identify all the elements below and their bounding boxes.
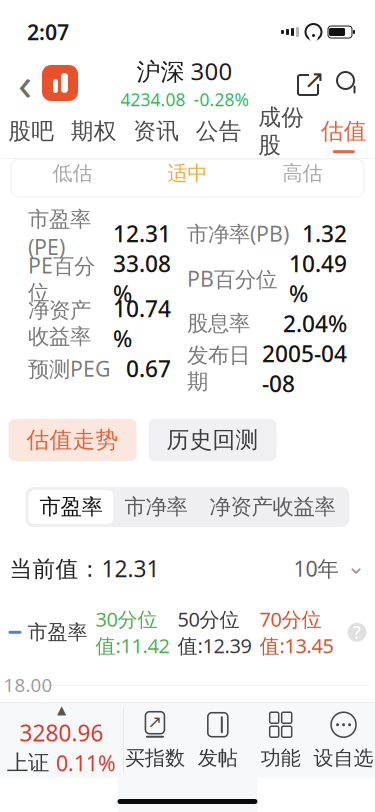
staticText: ▲ — [57, 703, 66, 717]
button[interactable]: 10年 — [293, 553, 365, 584]
button[interactable]: 市盈率 — [28, 490, 113, 524]
button[interactable]: 市净率 — [113, 490, 198, 524]
staticText: 公告 — [196, 117, 242, 145]
staticText: 3280.96 — [19, 718, 103, 748]
staticText: 10.49% — [289, 248, 347, 309]
staticText: 股吧 — [8, 117, 54, 145]
button[interactable]: 设自选 — [312, 702, 375, 778]
staticText: 50分位值:12.39 — [177, 606, 251, 659]
staticText: 低估 — [52, 161, 92, 186]
staticText: 市盈率(PE) — [28, 206, 91, 261]
button[interactable]: 返回 — [10, 61, 40, 105]
staticText: 当前值：12.31 — [9, 553, 159, 583]
staticText: 历史回测 — [166, 426, 258, 454]
staticText: 0.11% — [56, 749, 116, 777]
staticText: 设自选 — [314, 746, 374, 770]
staticText: 适中 — [167, 161, 207, 186]
staticText: 净资产收益率 — [28, 297, 91, 350]
staticText: 2:07 — [27, 18, 69, 46]
staticText: 1.32 — [302, 218, 347, 248]
staticText: 市净率(PB) — [187, 219, 289, 248]
staticText: 12.31 — [113, 218, 171, 248]
staticText: 市净率 — [124, 494, 187, 520]
staticText: ↗ — [303, 65, 324, 94]
button[interactable]: ↗ — [123, 702, 186, 778]
button[interactable]: 功能 — [249, 702, 312, 778]
button[interactable]: 成份股 — [250, 112, 312, 158]
staticText: 2.04% — [283, 308, 347, 338]
staticText: 股息率 — [187, 310, 250, 337]
staticText: 买指数 — [125, 746, 185, 770]
staticText: 估值 — [321, 117, 367, 145]
staticText: 10.74% — [113, 293, 171, 354]
staticText: 33.08% — [113, 248, 171, 309]
staticText: 市盈率 — [27, 620, 87, 645]
staticText: 高估 — [282, 161, 322, 186]
staticText: 功能 — [261, 746, 301, 770]
button[interactable]: 搜索 — [329, 61, 367, 105]
staticText: PE百分位 — [28, 251, 95, 306]
button[interactable]: 股吧 — [0, 112, 62, 158]
button[interactable]: 估值 — [312, 112, 375, 158]
staticText: 4234.08 — [120, 88, 185, 111]
staticText: 18.00 — [3, 672, 52, 697]
staticText: ↗ — [147, 712, 162, 732]
button[interactable]: 历史回测 — [148, 419, 276, 461]
staticText: 成份股 — [258, 103, 304, 159]
staticText: -0.28% — [193, 88, 248, 111]
staticText: 资讯 — [133, 117, 179, 145]
staticText: 30分位值:11.42 — [95, 606, 169, 659]
staticText: 2005-04-08 — [262, 338, 347, 399]
button[interactable]: 估值走势 — [8, 419, 136, 461]
staticText: 市盈率 — [39, 494, 102, 520]
button[interactable]: 说明 — [347, 621, 366, 644]
button[interactable]: 期权 — [62, 112, 125, 158]
staticText: ⌄ — [346, 553, 365, 579]
staticText: 发布日期 — [187, 342, 250, 395]
staticText: 净资产收益率 — [209, 494, 335, 520]
staticText: 沪深 300 — [136, 55, 232, 87]
button[interactable]: 净资产收益率 — [198, 490, 346, 524]
staticText: 发帖 — [198, 746, 238, 770]
button[interactable]: 公告 — [187, 112, 250, 158]
staticText: 估值走势 — [26, 426, 118, 454]
staticText: 10年 — [293, 554, 338, 582]
staticText: ‹ — [18, 53, 32, 113]
staticText: 预测PEG — [28, 354, 111, 383]
button[interactable]: 发帖 — [186, 702, 249, 778]
button[interactable]: 资讯 — [125, 112, 187, 158]
staticText: 0.67 — [126, 353, 171, 383]
staticText: 上证 — [7, 750, 49, 776]
staticText: ? — [353, 621, 361, 644]
staticText: 16.00 — [3, 728, 52, 753]
staticText: 期权 — [71, 117, 117, 145]
button[interactable]: ▲ — [0, 702, 123, 778]
staticText: PB百分位 — [187, 264, 277, 293]
staticText: 70分位值:13.45 — [259, 606, 333, 659]
button[interactable]: 分享 — [291, 61, 329, 105]
